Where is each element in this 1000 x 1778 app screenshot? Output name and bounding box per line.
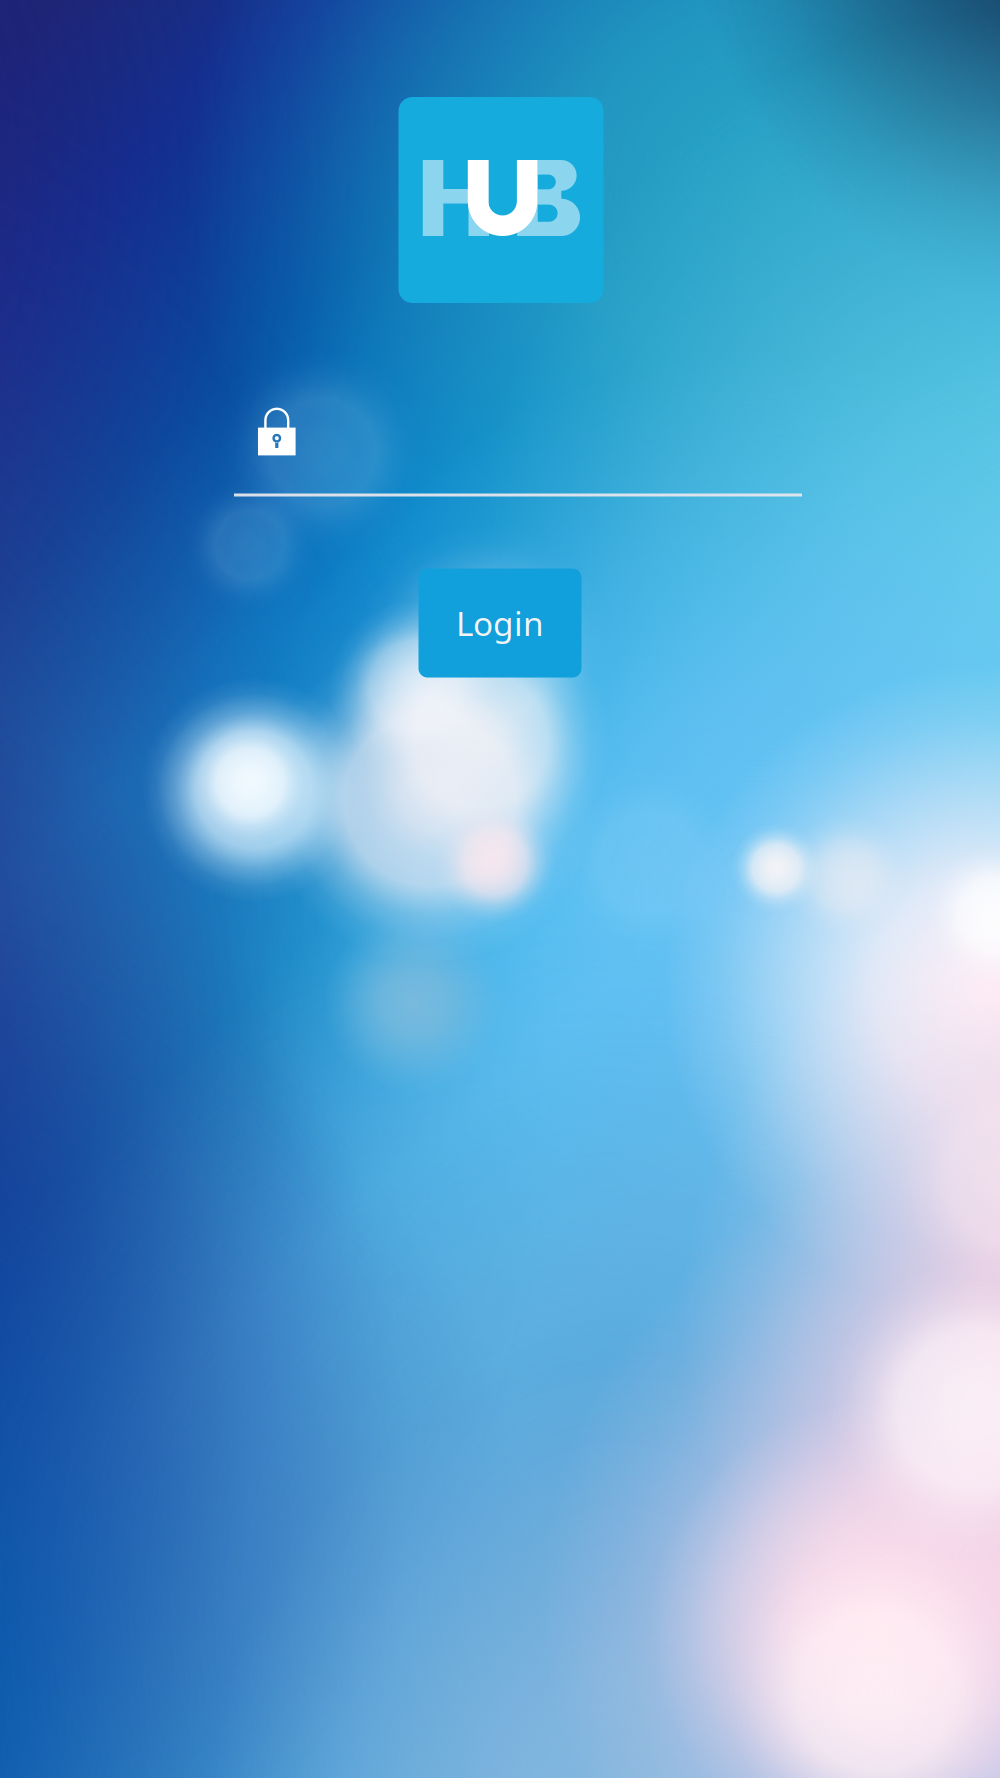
staticText: Login [456,601,544,645]
button[interactable]: Login [418,568,581,677]
